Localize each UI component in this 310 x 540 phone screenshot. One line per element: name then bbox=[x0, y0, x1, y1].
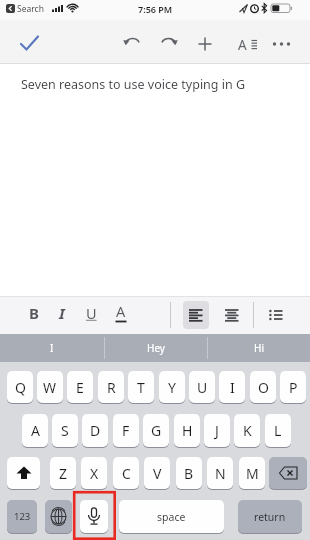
button[interactable]: B bbox=[176, 457, 202, 489]
staticText: A bbox=[31, 421, 40, 440]
staticText: Search bbox=[17, 3, 44, 15]
staticText: Hey bbox=[147, 341, 165, 355]
button[interactable] bbox=[197, 36, 213, 52]
button[interactable]: L bbox=[265, 414, 291, 447]
button[interactable] bbox=[263, 301, 289, 329]
staticText: Q bbox=[15, 378, 26, 397]
button[interactable]: W bbox=[37, 371, 63, 403]
staticText: I bbox=[59, 303, 65, 323]
button[interactable] bbox=[158, 34, 178, 54]
button[interactable] bbox=[17, 33, 43, 55]
staticText: A bbox=[116, 301, 126, 321]
staticText: K bbox=[243, 421, 252, 440]
button[interactable]: V bbox=[144, 457, 170, 489]
button[interactable] bbox=[80, 500, 108, 533]
button[interactable]: P bbox=[280, 371, 306, 403]
button[interactable]: return bbox=[238, 500, 302, 533]
staticText: P bbox=[289, 378, 298, 397]
staticText: J bbox=[215, 421, 219, 440]
button[interactable]: B bbox=[24, 301, 44, 325]
button[interactable]: A bbox=[238, 34, 259, 54]
button[interactable]: K bbox=[234, 414, 260, 447]
button[interactable]: X bbox=[81, 457, 107, 489]
button[interactable] bbox=[269, 457, 307, 489]
staticText: I bbox=[230, 378, 235, 397]
button[interactable]: G bbox=[143, 414, 169, 447]
button[interactable]: Hi bbox=[207, 334, 310, 362]
button[interactable]: E bbox=[67, 371, 93, 403]
button[interactable] bbox=[123, 34, 143, 54]
staticText: B bbox=[184, 464, 194, 483]
button[interactable]: Hey bbox=[104, 334, 207, 362]
staticText: B bbox=[29, 303, 39, 323]
staticText: 123 bbox=[14, 510, 31, 523]
button[interactable]: I bbox=[0, 334, 104, 362]
staticText: U bbox=[197, 378, 208, 397]
button[interactable]: space bbox=[119, 500, 224, 533]
button[interactable]: Q bbox=[7, 371, 33, 403]
staticText: U bbox=[86, 303, 97, 323]
staticText: F bbox=[122, 421, 130, 440]
staticText: E bbox=[76, 378, 84, 397]
staticText: Y bbox=[168, 378, 176, 397]
button[interactable]: C bbox=[113, 457, 139, 489]
button[interactable]: A bbox=[22, 414, 48, 447]
staticText: Seven reasons to use voice typing in G bbox=[21, 76, 246, 93]
staticText: O bbox=[258, 378, 269, 397]
staticText: X bbox=[90, 464, 99, 483]
staticText: Z bbox=[59, 464, 68, 483]
button[interactable]: F bbox=[113, 414, 139, 447]
button[interactable]: U bbox=[189, 371, 215, 403]
button[interactable]: A bbox=[111, 301, 131, 325]
staticText: I bbox=[50, 341, 54, 355]
staticText: H bbox=[182, 421, 193, 440]
staticText: C bbox=[122, 464, 131, 483]
button[interactable] bbox=[219, 301, 245, 329]
button[interactable] bbox=[271, 36, 292, 52]
button[interactable]: T bbox=[128, 371, 154, 403]
staticText: L bbox=[274, 421, 282, 440]
staticText: W bbox=[43, 378, 57, 397]
button[interactable]: Y bbox=[159, 371, 185, 403]
button[interactable]: D bbox=[82, 414, 108, 447]
staticText: return bbox=[254, 510, 286, 524]
button[interactable]: R bbox=[98, 371, 124, 403]
staticText: A bbox=[238, 36, 247, 54]
staticText: Hi bbox=[254, 341, 264, 355]
button[interactable]: N bbox=[207, 457, 233, 489]
staticText: D bbox=[90, 421, 101, 440]
button[interactable]: Z bbox=[50, 457, 76, 489]
staticText: R bbox=[107, 378, 116, 397]
button[interactable] bbox=[7, 457, 40, 489]
button[interactable]: 123 bbox=[7, 500, 37, 533]
button[interactable]: U bbox=[81, 301, 101, 325]
button[interactable]: H bbox=[174, 414, 200, 447]
staticText: M bbox=[246, 464, 259, 483]
staticText: N bbox=[215, 464, 226, 483]
staticText: T bbox=[137, 378, 145, 397]
button[interactable]: O bbox=[250, 371, 276, 403]
staticText: S bbox=[61, 421, 69, 440]
staticText: space bbox=[157, 510, 186, 524]
staticText: G bbox=[151, 421, 162, 440]
button[interactable]: S bbox=[52, 414, 78, 447]
staticText: V bbox=[153, 464, 162, 483]
button[interactable]: M bbox=[239, 457, 265, 489]
staticText: 7:56 PM bbox=[138, 3, 173, 15]
button[interactable]: I bbox=[52, 301, 72, 325]
button[interactable]: I bbox=[219, 371, 245, 403]
button[interactable] bbox=[45, 500, 72, 533]
button[interactable]: J bbox=[204, 414, 230, 447]
button[interactable] bbox=[183, 301, 209, 329]
